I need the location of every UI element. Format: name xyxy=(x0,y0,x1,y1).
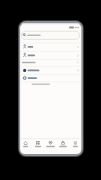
button[interactable] xyxy=(20,139,32,149)
button[interactable] xyxy=(20,75,81,83)
button[interactable] xyxy=(20,52,81,61)
button[interactable] xyxy=(57,139,69,149)
button[interactable] xyxy=(20,60,81,66)
button[interactable] xyxy=(20,43,81,52)
button[interactable] xyxy=(32,139,44,149)
button[interactable] xyxy=(22,31,80,39)
button[interactable] xyxy=(69,139,81,149)
button[interactable] xyxy=(20,67,81,75)
button[interactable] xyxy=(44,139,56,149)
